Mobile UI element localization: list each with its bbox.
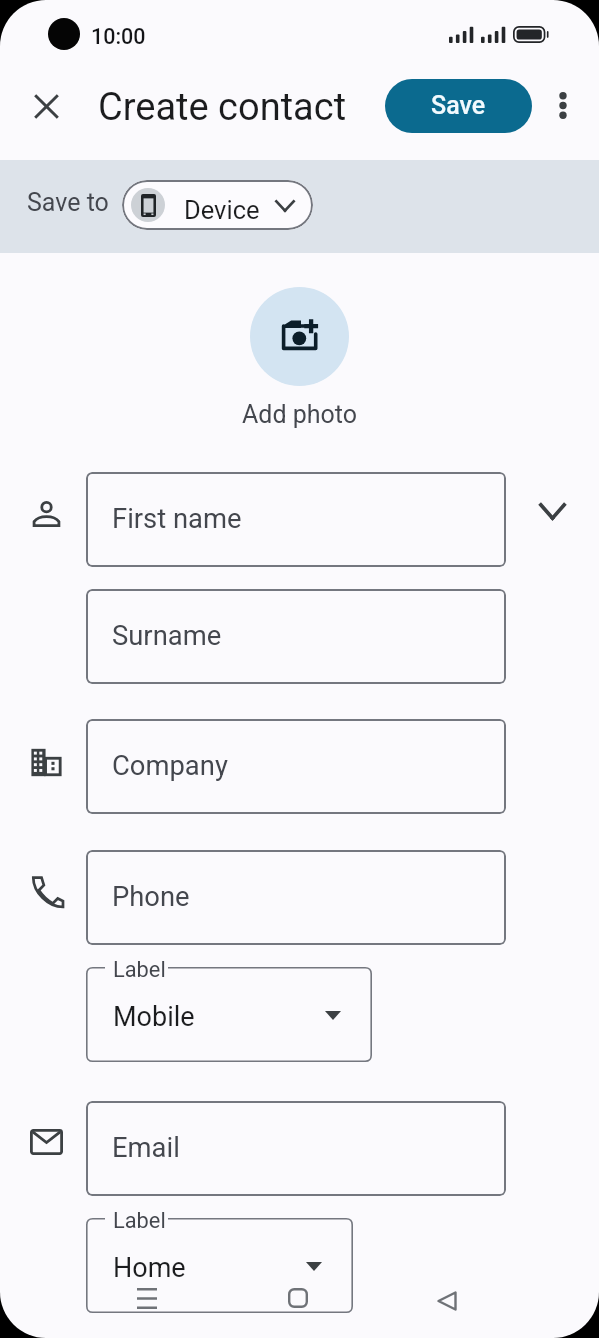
button[interactable]: Label <box>86 1218 353 1313</box>
staticText: 10:00 <box>91 24 146 49</box>
staticText: Mobile <box>113 1001 195 1033</box>
staticText: Label <box>113 1208 166 1234</box>
button[interactable]: Label <box>86 967 372 1062</box>
staticText: Label <box>113 957 166 983</box>
staticText: Home <box>113 1252 186 1284</box>
button[interactable]: First name <box>86 472 506 567</box>
button[interactable]: Company <box>86 719 506 814</box>
staticText: Surname <box>112 620 222 652</box>
button[interactable]: Device <box>122 180 313 230</box>
button[interactable]: Close <box>22 82 71 131</box>
staticText: Device <box>184 195 260 225</box>
button[interactable]: Recent apps <box>123 1274 171 1322</box>
button[interactable]: Email <box>86 1101 506 1196</box>
staticText: Phone <box>112 881 190 913</box>
button[interactable] <box>250 287 349 386</box>
staticText: Save <box>431 91 486 120</box>
staticText: Email <box>112 1132 180 1164</box>
staticText: Create contact <box>98 85 347 130</box>
button[interactable]: Expand name fields <box>528 487 577 536</box>
button[interactable]: Save <box>385 79 532 133</box>
button[interactable]: Back <box>423 1277 471 1325</box>
staticText: First name <box>112 503 242 535</box>
button[interactable]: Surname <box>86 589 506 684</box>
staticText: Add photo <box>242 400 357 429</box>
staticText: Save to <box>27 188 109 217</box>
button[interactable]: More options <box>538 81 587 130</box>
button[interactable]: Home <box>274 1274 322 1322</box>
staticText: Company <box>112 750 228 782</box>
button[interactable]: Phone <box>86 850 506 945</box>
